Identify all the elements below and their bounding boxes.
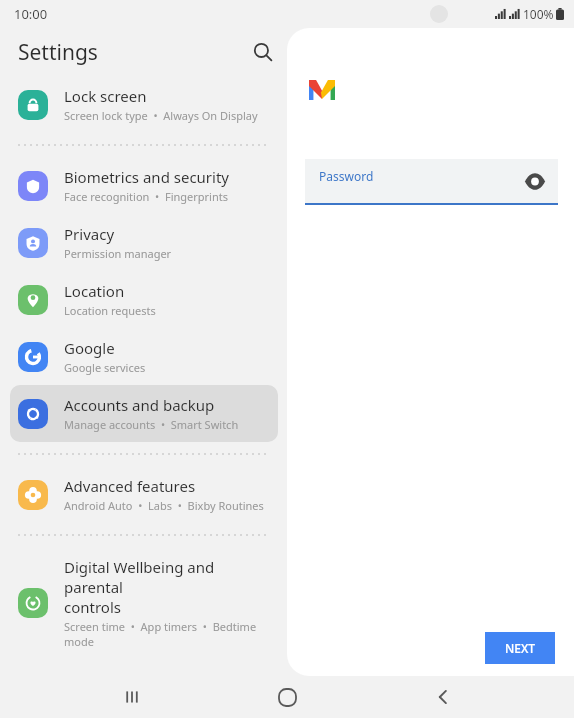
staticText: Screen time • App timers • Bedtime mode (64, 619, 272, 649)
staticText: Advanced features (64, 476, 196, 496)
staticText: Accounts and backup (64, 395, 215, 415)
staticText: Screen lock type • Always On Display (64, 108, 258, 123)
staticText: Password (319, 168, 374, 184)
staticText: Android Auto • Labs • Bixby Routines (64, 498, 264, 513)
staticText: Location requests (64, 303, 156, 318)
button[interactable]: Google (10, 328, 278, 385)
staticText: Settings (18, 38, 98, 67)
button[interactable]: Password (305, 159, 558, 203)
button[interactable]: Search (244, 33, 282, 71)
button[interactable]: Digital Wellbeing and parental (10, 547, 278, 659)
staticText: 10:00 (14, 5, 48, 23)
staticText: controls (64, 597, 121, 617)
staticText: Lock screen (64, 86, 147, 106)
button[interactable]: Recents (108, 676, 156, 718)
button[interactable]: Accounts and backup (10, 385, 278, 442)
button[interactable]: Advanced features (10, 466, 278, 523)
staticText: Face recognition • Fingerprints (64, 189, 228, 204)
button[interactable]: Lock screen (10, 76, 278, 133)
staticText: Location (64, 281, 125, 301)
staticText: Permission manager (64, 246, 172, 261)
staticText: Biometrics and security (64, 167, 230, 187)
button[interactable]: Show password (522, 168, 548, 194)
staticText: Manage accounts • Smart Switch (64, 417, 239, 432)
button[interactable]: Biometrics and security (10, 157, 278, 214)
staticText: Privacy (64, 224, 115, 244)
button[interactable]: Location (10, 271, 278, 328)
button[interactable]: NEXT (485, 632, 555, 664)
staticText: NEXT (505, 640, 536, 656)
button[interactable]: Back (419, 676, 467, 718)
staticText: Digital Wellbeing and parental (64, 557, 272, 597)
staticText: 100% (523, 6, 554, 22)
staticText: Google services (64, 360, 146, 375)
staticText: Google (64, 338, 115, 358)
button[interactable]: Home (263, 676, 311, 718)
button[interactable]: Privacy (10, 214, 278, 271)
